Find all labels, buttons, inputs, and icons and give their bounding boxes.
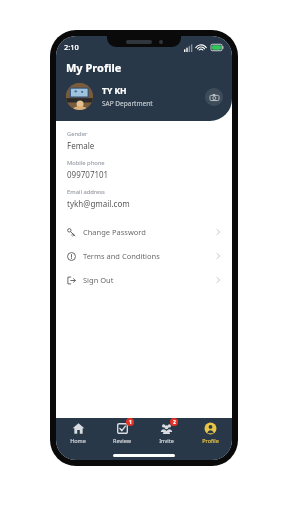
staticText: 1: [129, 419, 132, 426]
staticText: SAP Department: [102, 99, 153, 108]
staticText: Review: [113, 437, 131, 444]
staticText: Profile: [202, 437, 219, 444]
staticText: Home: [70, 437, 86, 444]
button[interactable]: Change Password: [56, 220, 232, 244]
staticText: 2:10: [64, 42, 79, 52]
staticText: Female: [67, 140, 95, 151]
staticText: Gender: [67, 130, 88, 138]
button[interactable]: Sign Out: [56, 268, 232, 292]
button[interactable]: 1: [100, 421, 144, 445]
staticText: Invite: [159, 437, 174, 444]
staticText: 2: [173, 419, 176, 426]
button[interactable]: TY KH: [66, 83, 223, 110]
staticText: 099707101: [67, 169, 109, 180]
staticText: Change Password: [83, 227, 146, 237]
staticText: My Profile: [66, 60, 122, 75]
staticText: Terms and Conditions: [83, 251, 160, 261]
button[interactable]: Home: [56, 421, 100, 445]
staticText: Email address: [67, 188, 105, 196]
staticText: TY KH: [102, 85, 127, 97]
staticText: Sign Out: [83, 275, 114, 285]
staticText: tykh@gmail.com: [67, 198, 130, 209]
button[interactable]: 2: [144, 421, 188, 445]
button[interactable]: Profile: [188, 421, 232, 445]
staticText: Mobile phone: [67, 159, 105, 167]
button[interactable]: Terms and Conditions: [56, 244, 232, 268]
button[interactable]: Change profile photo: [205, 88, 223, 106]
